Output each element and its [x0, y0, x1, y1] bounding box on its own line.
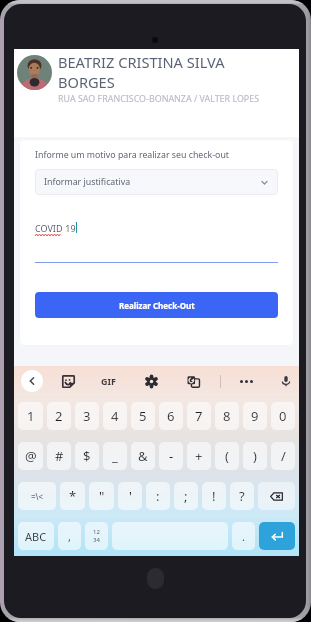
button[interactable]: Voice input [280, 375, 292, 387]
button[interactable]: - [159, 442, 183, 470]
button[interactable]: Realizar Check-Out [35, 292, 278, 318]
staticText: _ [112, 447, 118, 465]
staticText: RUA SAO FRANCISCO-BONANZA / VALTER LOPES [58, 92, 260, 104]
staticText: 8 [223, 407, 231, 425]
button[interactable]: * [60, 482, 85, 510]
button[interactable]: : [146, 482, 170, 510]
button[interactable]: 6 [159, 402, 183, 430]
button[interactable] [112, 522, 228, 550]
staticText: ! [212, 487, 216, 505]
button[interactable]: 1 [18, 402, 43, 430]
button[interactable]: Translate [187, 375, 200, 388]
button[interactable]: Settings [145, 375, 158, 388]
staticText: * [69, 487, 77, 505]
staticText: =\< [31, 491, 44, 502]
staticText: ) [253, 447, 257, 465]
button[interactable]: ) [243, 442, 267, 470]
button[interactable]: & [131, 442, 155, 470]
staticText: : [156, 487, 160, 505]
button[interactable]: . [232, 522, 255, 550]
staticText: ABC [25, 529, 47, 544]
staticText: , [68, 529, 71, 544]
staticText: ( [225, 447, 229, 465]
button[interactable]: 2 [47, 402, 71, 430]
staticText: . [242, 529, 245, 544]
button[interactable]: " [89, 482, 114, 510]
staticText: ? [239, 487, 245, 505]
staticText: BEATRIZ CRISTINA SILVA [58, 52, 225, 72]
staticText: Informar justificativa [44, 176, 131, 188]
button[interactable]: @ [18, 442, 43, 470]
button[interactable]: # [47, 442, 71, 470]
button[interactable]: 12 [85, 522, 108, 550]
button[interactable]: Informar justificativa [35, 169, 278, 195]
button[interactable]: 0 [271, 402, 295, 430]
staticText: 19 [63, 222, 76, 234]
button[interactable]: $ [75, 442, 99, 470]
staticText: 1 [27, 407, 35, 425]
button[interactable]: ! [202, 482, 226, 510]
staticText: 0 [279, 407, 287, 425]
button[interactable]: 5 [131, 402, 155, 430]
staticText: $ [83, 447, 91, 465]
button[interactable]: ( [215, 442, 239, 470]
staticText: / [281, 447, 286, 465]
button[interactable]: _ [103, 442, 127, 470]
button[interactable]: Stickers [62, 375, 75, 388]
button[interactable]: Backspace [258, 482, 295, 510]
staticText: " [99, 487, 105, 505]
staticText: 9 [251, 407, 259, 425]
button[interactable]: =\< [18, 482, 56, 510]
button[interactable]: 3 [75, 402, 99, 430]
staticText: 4 [111, 407, 119, 425]
staticText: ' [129, 487, 132, 505]
staticText: BORGES [58, 72, 115, 92]
button[interactable]: GIF [101, 375, 116, 387]
button[interactable]: ABC [18, 522, 54, 550]
staticText: 34 [93, 536, 100, 544]
button[interactable]: Back [21, 370, 43, 392]
staticText: Realizar Check-Out [119, 300, 195, 311]
staticText: 5 [139, 407, 147, 425]
button[interactable]: , [58, 522, 81, 550]
staticText: 12 [93, 528, 100, 536]
staticText: 6 [167, 407, 175, 425]
button[interactable]: 4 [103, 402, 127, 430]
staticText: + [195, 447, 203, 465]
staticText: 2 [55, 407, 63, 425]
button[interactable]: + [187, 442, 211, 470]
button[interactable]: ? [230, 482, 254, 510]
staticText: @ [25, 447, 37, 465]
button[interactable]: ' [118, 482, 142, 510]
button[interactable]: 9 [243, 402, 267, 430]
staticText: & [138, 447, 148, 465]
button[interactable]: 7 [187, 402, 211, 430]
staticText: 3 [83, 407, 91, 425]
button[interactable]: / [271, 442, 295, 470]
staticText: COVID [35, 222, 63, 234]
button[interactable]: 8 [215, 402, 239, 430]
button[interactable]: ; [174, 482, 198, 510]
staticText: ; [184, 487, 188, 505]
button[interactable]: Enter [259, 522, 295, 550]
staticText: # [55, 447, 64, 465]
staticText: 7 [195, 407, 203, 425]
staticText: Informe um motivo para realizar seu chec… [35, 149, 230, 161]
staticText: - [169, 447, 174, 465]
button[interactable]: More options [239, 380, 254, 383]
